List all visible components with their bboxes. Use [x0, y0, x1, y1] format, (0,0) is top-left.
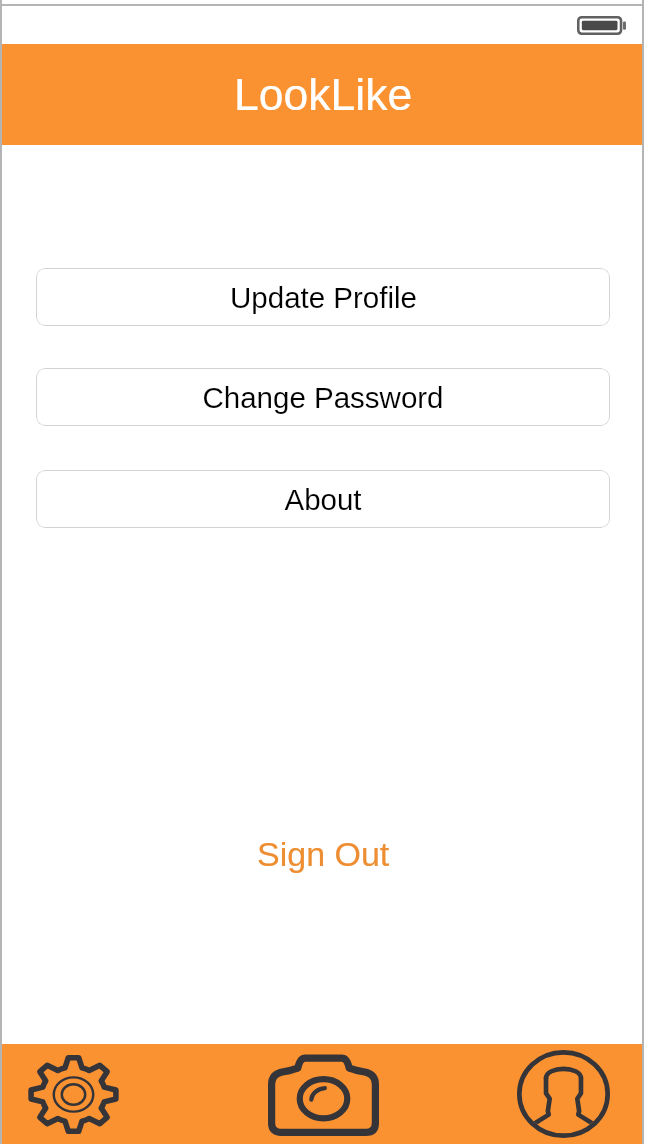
staticText: Update Profile — [230, 281, 417, 314]
staticText: About — [284, 483, 362, 516]
staticText: Change Password — [202, 381, 444, 414]
staticText: LookLike — [234, 70, 413, 120]
button[interactable]: Update Profile — [36, 268, 610, 326]
button[interactable]: Camera — [236, 1044, 412, 1144]
button[interactable]: Profile — [500, 1044, 644, 1144]
button[interactable]: Sign Out — [229, 825, 418, 883]
button[interactable]: About — [36, 470, 610, 528]
staticText: Sign Out — [257, 835, 390, 873]
button[interactable]: Change Password — [36, 368, 610, 426]
button[interactable]: Settings — [2, 1044, 146, 1144]
